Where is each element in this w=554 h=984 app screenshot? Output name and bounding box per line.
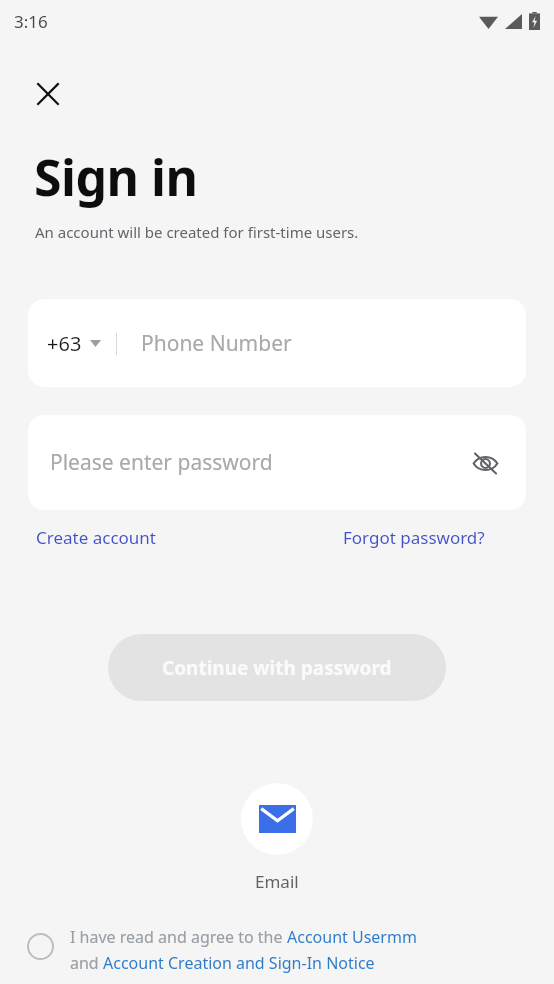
button[interactable]: Close <box>26 72 70 116</box>
staticText: 3:16 <box>14 10 48 33</box>
staticText: Phone Number <box>141 329 292 358</box>
button[interactable]: Account Usermm <box>287 926 417 948</box>
staticText: Continue with password <box>162 655 392 681</box>
staticText: Email <box>255 870 299 893</box>
button[interactable]: Create account <box>36 526 156 549</box>
staticText: I have read and agree to the <box>70 926 287 948</box>
button[interactable]: Agree checkbox <box>26 926 526 974</box>
other: Agree checkbox <box>26 932 54 960</box>
button[interactable]: Please enter password <box>28 415 526 510</box>
button[interactable]: Email <box>241 783 313 855</box>
staticText: Account Creation and Sign-In Notice <box>103 952 375 974</box>
button[interactable]: Show password <box>464 442 506 484</box>
button[interactable]: Account Creation and Sign-In Notice <box>103 952 375 974</box>
staticText: An account will be created for first-tim… <box>35 222 359 242</box>
staticText: Forgot password? <box>343 526 485 549</box>
button[interactable]: Forgot password? <box>343 526 485 549</box>
staticText: Please enter password <box>50 448 273 477</box>
button[interactable]: Continue with password <box>108 634 446 701</box>
staticText: +63 <box>47 330 82 357</box>
staticText: Account Usermm <box>287 926 417 948</box>
button[interactable]: +63 <box>28 299 526 387</box>
staticText: Sign in <box>34 143 198 211</box>
staticText: and <box>70 952 103 974</box>
staticText: Create account <box>36 526 156 549</box>
